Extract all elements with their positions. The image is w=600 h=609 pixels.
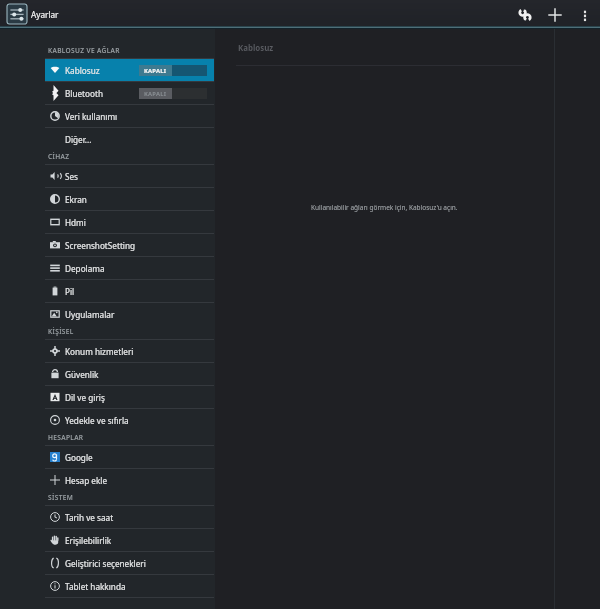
staticText: Yedekle ve sıfırla <box>65 415 129 426</box>
staticText: Ses <box>65 171 79 182</box>
staticText: Tablet hakkında <box>65 581 126 592</box>
staticText: Erişilebilirlik <box>65 535 112 546</box>
button[interactable]: Sync <box>511 1 539 29</box>
button[interactable]: Pil <box>0 280 215 302</box>
staticText: Kablosuz <box>65 65 100 76</box>
staticText: Bluetooth <box>65 88 103 99</box>
button[interactable]: Ses <box>0 165 215 187</box>
staticText: Pil <box>65 286 75 297</box>
staticText: Ekran <box>65 194 87 205</box>
button[interactable]: Güvenlik <box>0 363 215 385</box>
staticText: KİŞİSEL <box>48 327 74 336</box>
button[interactable]: Tablet hakkında <box>0 575 215 597</box>
button[interactable]: Geliştirici seçenekleri <box>0 552 215 574</box>
button[interactable]: Veri kullanımı <box>0 105 215 127</box>
button[interactable]: Konum hizmetleri <box>0 340 215 362</box>
staticText: Kullanılabilir ağları görmek için, Kablo… <box>311 203 458 212</box>
staticText: Google <box>65 452 93 463</box>
staticText: Güvenlik <box>65 369 99 380</box>
button[interactable]: Add <box>541 1 569 29</box>
staticText: Konum hizmetleri <box>65 346 134 357</box>
button[interactable]: Kablosuz <box>0 59 215 81</box>
button[interactable]: Erişilebilirlik <box>0 529 215 551</box>
staticText: SİSTEM <box>48 493 74 502</box>
button[interactable]: Tarih ve saat <box>0 506 215 528</box>
staticText: KAPALI <box>144 67 167 75</box>
button[interactable]: Hdmi <box>0 211 215 233</box>
staticText: Depolama <box>65 263 105 274</box>
staticText: Tarih ve saat <box>65 512 114 523</box>
staticText: CİHAZ <box>48 152 70 161</box>
staticText: KABLOSUZ VE AĞLAR <box>48 46 120 55</box>
button[interactable]: Yedekle ve sıfırla <box>0 409 215 431</box>
staticText: Hdmi <box>65 217 86 228</box>
staticText: Kablosuz <box>238 43 274 54</box>
staticText: Veri kullanımı <box>65 111 118 122</box>
staticText: KAPALI <box>144 90 167 98</box>
button[interactable]: ScreenshotSetting <box>0 234 215 256</box>
button[interactable]: Dil ve giriş <box>0 386 215 408</box>
staticText: Geliştirici seçenekleri <box>65 558 146 569</box>
staticText: Uygulamalar <box>65 309 115 320</box>
button[interactable]: Depolama <box>0 257 215 279</box>
button[interactable]: Ekran <box>0 188 215 210</box>
button[interactable]: Google <box>0 446 215 468</box>
staticText: Hesap ekle <box>65 475 108 486</box>
button[interactable]: Uygulamalar <box>0 303 215 325</box>
button[interactable]: Diğer... <box>0 128 215 150</box>
button[interactable]: Settings <box>7 4 27 24</box>
button[interactable]: More options <box>571 1 599 29</box>
button[interactable]: Hesap ekle <box>0 469 215 491</box>
staticText: Ayarlar <box>31 9 59 20</box>
staticText: Diğer... <box>65 134 92 145</box>
button[interactable]: Bluetooth <box>0 82 215 104</box>
staticText: ScreenshotSetting <box>65 240 136 251</box>
staticText: HESAPLAR <box>48 433 84 442</box>
staticText: Dil ve giriş <box>65 392 105 403</box>
